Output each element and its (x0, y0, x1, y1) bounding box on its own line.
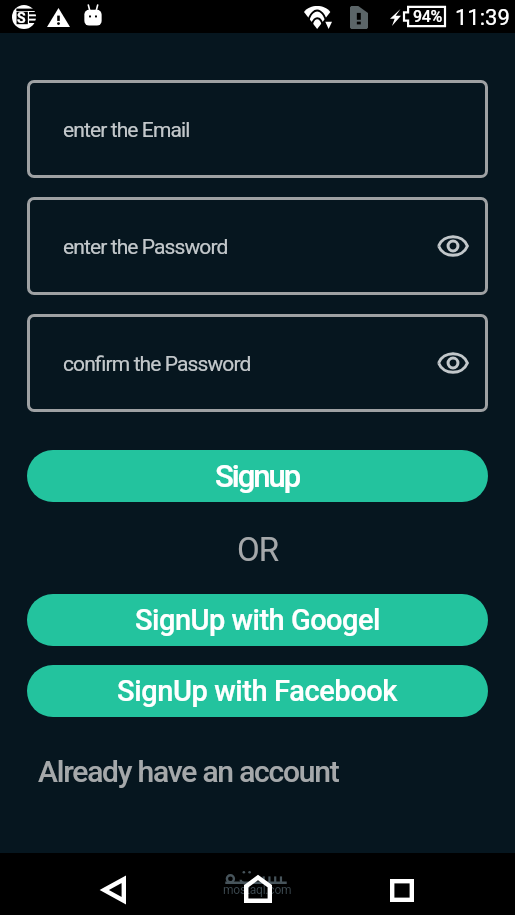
staticText: Signup (215, 458, 300, 494)
staticText: enter the Password (63, 235, 228, 260)
button[interactable]: confirm the Password (27, 314, 488, 412)
button[interactable]: enter the Password (27, 197, 488, 295)
staticText: Already have an account (38, 754, 339, 789)
button[interactable]: Home (234, 865, 282, 913)
staticText: enter the Email (63, 118, 190, 143)
button[interactable]: Toggle password visibility (433, 226, 473, 266)
staticText: 94% (413, 7, 443, 26)
staticText: 11:39 (455, 5, 510, 31)
staticText: S (17, 10, 26, 26)
staticText: SignUp with Googel (135, 603, 380, 637)
button[interactable]: Signup (27, 450, 488, 502)
button[interactable]: SignUp with Facebook (27, 665, 488, 717)
button[interactable]: SignUp with Googel (27, 594, 488, 646)
staticText: confirm the Password (63, 352, 251, 377)
staticText: SignUp with Facebook (117, 674, 398, 708)
button[interactable]: Already have an account (38, 754, 339, 789)
staticText: mostaql.com (223, 883, 292, 897)
staticText: OR (237, 530, 279, 569)
button[interactable]: Recents (378, 866, 426, 914)
button[interactable]: enter the Email (27, 80, 488, 178)
button[interactable]: Back (90, 866, 138, 914)
button[interactable]: Toggle password visibility (433, 343, 473, 383)
